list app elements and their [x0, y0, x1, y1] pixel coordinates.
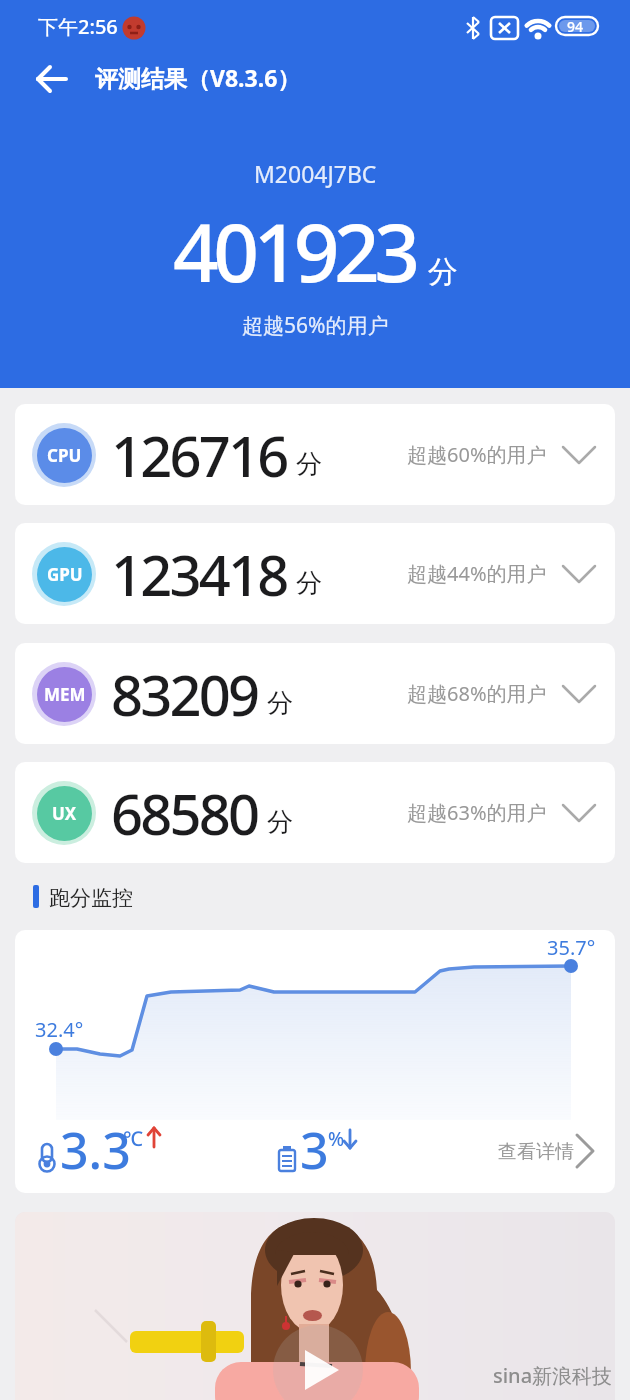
staticText: 超越60%的用户 — [407, 441, 547, 468]
staticText: 3 — [300, 1116, 329, 1184]
staticText: 35.7° — [547, 934, 596, 961]
staticText: 401923 — [173, 196, 415, 305]
staticText: MEM — [44, 683, 86, 706]
button[interactable]: sina新浪科技 — [15, 1212, 615, 1400]
staticText: 分 — [267, 687, 293, 720]
staticText: 评测结果（V8.3.6） — [95, 62, 301, 93]
staticText: M2004J7BC — [254, 158, 377, 189]
staticText: 83209 — [111, 656, 258, 732]
staticText: UX — [52, 802, 77, 825]
staticText: GPU — [47, 563, 83, 586]
staticText: CPU — [47, 444, 82, 467]
button[interactable]: MEM — [15, 643, 615, 744]
staticText: 超越68%的用户 — [407, 680, 547, 707]
staticText: ℃ — [123, 1125, 143, 1152]
staticText: 分 — [267, 806, 293, 839]
button[interactable]: GPU — [15, 523, 615, 624]
button[interactable]: CPU — [15, 404, 615, 505]
staticText: 分 — [296, 567, 322, 600]
staticText: 126716 — [111, 417, 287, 493]
staticText: 分 — [296, 448, 322, 481]
staticText: 32.4° — [35, 1016, 84, 1043]
staticText: % — [328, 1126, 345, 1152]
staticText: 123418 — [111, 536, 287, 612]
button[interactable]: 32.4° — [15, 930, 615, 1193]
staticText: 超越44%的用户 — [407, 560, 547, 587]
staticText: 3.3 — [60, 1116, 131, 1184]
staticText: 跑分监控 — [49, 885, 133, 908]
staticText: 68580 — [111, 775, 258, 851]
button[interactable]: UX — [15, 762, 615, 863]
button[interactable]: 查看详情 — [498, 1140, 574, 1164]
staticText: 分 — [428, 253, 458, 291]
staticText: 下午2:56 — [38, 13, 118, 40]
staticText: 超越63%的用户 — [407, 799, 547, 826]
staticText: 94 — [567, 17, 584, 36]
staticText: 超越56%的用户 — [242, 311, 389, 340]
button[interactable] — [36, 63, 68, 95]
staticText: sina新浪科技 — [493, 1362, 613, 1389]
